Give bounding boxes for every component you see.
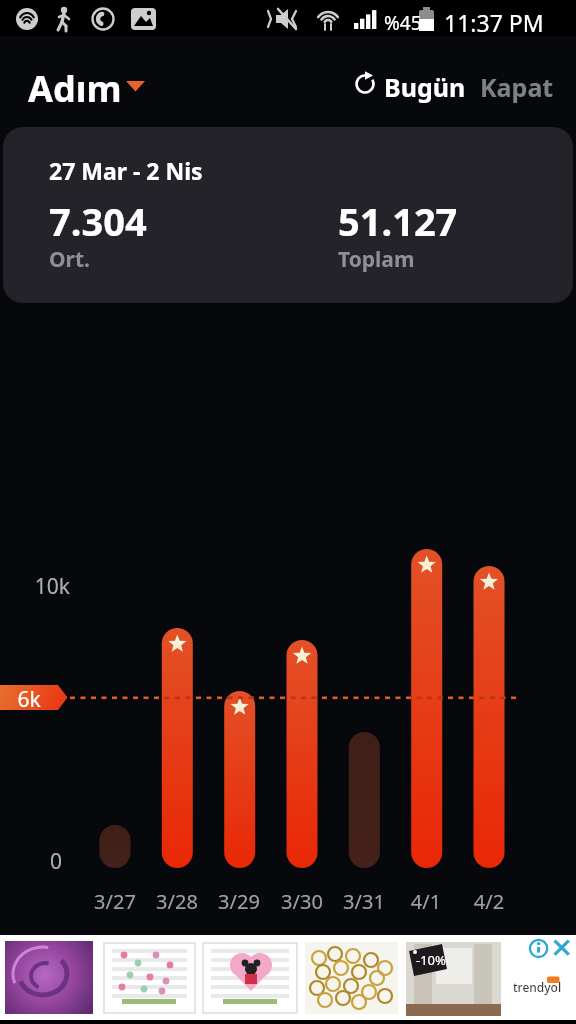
staticText: 3/27 bbox=[84, 888, 146, 915]
staticText: 4/1 bbox=[395, 888, 457, 915]
staticText: %45 bbox=[384, 10, 422, 36]
staticText: 11:37 PM bbox=[444, 7, 544, 38]
staticText: 3/28 bbox=[146, 888, 208, 915]
staticText: 3/30 bbox=[271, 888, 333, 915]
staticText: 10k bbox=[30, 572, 70, 601]
staticText: -10% bbox=[416, 951, 446, 969]
button[interactable] bbox=[524, 939, 576, 965]
staticText: 6k bbox=[0, 685, 58, 714]
button[interactable]: -10% bbox=[0, 935, 576, 1020]
staticText: 4/2 bbox=[458, 888, 520, 915]
staticText: 3/29 bbox=[208, 888, 270, 915]
button[interactable]: Kapat bbox=[474, 68, 554, 108]
button[interactable]: Adım bbox=[20, 56, 150, 108]
staticText: 0 bbox=[30, 847, 62, 876]
staticText: 7.304 bbox=[49, 195, 147, 247]
staticText: trendyol bbox=[513, 979, 562, 995]
staticText: 3/31 bbox=[333, 888, 395, 915]
staticText: Toplam bbox=[338, 245, 415, 274]
staticText: Bugün bbox=[384, 70, 466, 104]
staticText: 27 Mar - 2 Nis bbox=[49, 155, 203, 186]
staticText: 51.127 bbox=[338, 195, 458, 247]
staticText: Kapat bbox=[480, 70, 554, 104]
staticText: Ort. bbox=[49, 245, 91, 274]
button[interactable]: 27 Mar - 2 Nis bbox=[3, 127, 573, 303]
button[interactable]: Bugün bbox=[348, 68, 463, 108]
staticText: Adım bbox=[28, 64, 122, 113]
